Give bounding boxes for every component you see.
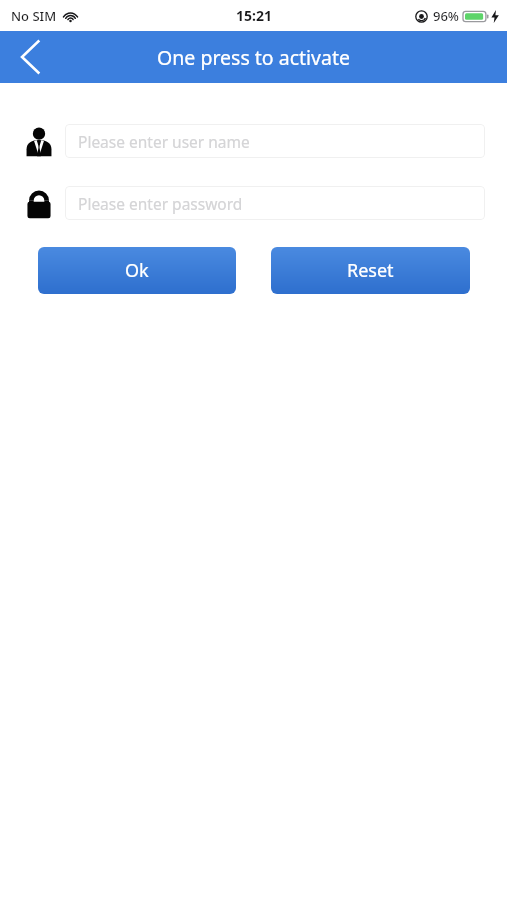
button[interactable]: Please enter user name	[65, 124, 485, 158]
button[interactable]: Ok	[38, 247, 236, 294]
button[interactable]: Back	[0, 31, 60, 83]
staticText: Ok	[125, 258, 149, 283]
button[interactable]: Please enter password	[65, 186, 485, 220]
staticText: No SIM	[11, 7, 57, 25]
staticText: One press to activate	[157, 44, 350, 71]
staticText: Reset	[347, 258, 394, 283]
staticText: Please enter password	[78, 193, 243, 214]
staticText: 15:21	[236, 6, 272, 25]
button[interactable]: Reset	[271, 247, 470, 294]
staticText: Please enter user name	[78, 131, 250, 152]
staticText: 96%	[433, 7, 459, 25]
